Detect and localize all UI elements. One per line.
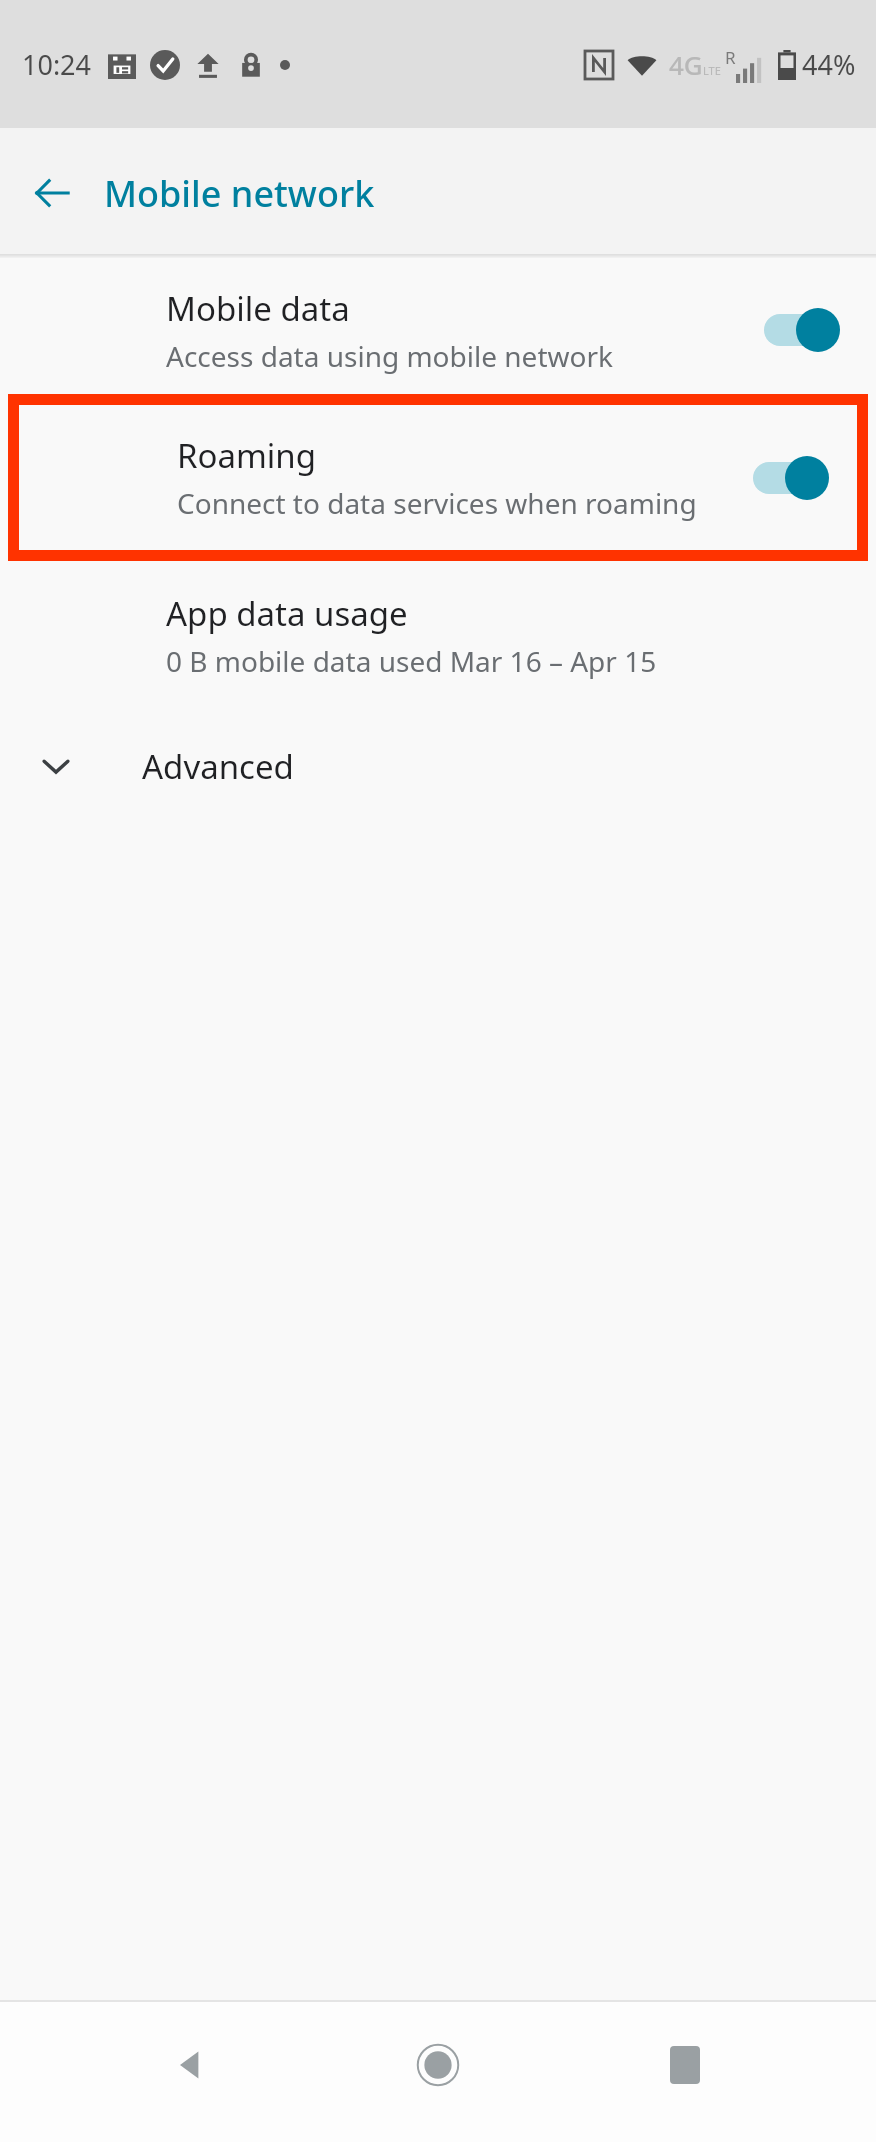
staticText: Mobile data	[166, 286, 350, 331]
button[interactable]: Back	[137, 2010, 247, 2120]
staticText: 44%	[802, 46, 856, 83]
staticText: App data usage	[166, 591, 408, 636]
staticText: Advanced	[142, 744, 294, 789]
button[interactable]: Recent apps	[630, 2010, 740, 2120]
staticText: Mobile network	[104, 169, 375, 218]
staticText: LTE	[703, 63, 721, 78]
staticText: Connect to data services when roaming	[177, 484, 697, 522]
button[interactable]: Home	[383, 2010, 493, 2120]
button[interactable]: Back	[16, 157, 88, 229]
button[interactable]: Advanced	[0, 718, 876, 814]
button[interactable]: App data usage	[0, 575, 876, 696]
staticText: 10:24	[22, 46, 92, 83]
staticText: R	[725, 46, 736, 69]
button[interactable]: Roaming	[19, 405, 857, 550]
staticText: Roaming	[177, 433, 317, 478]
button[interactable]: Toggle on	[762, 302, 840, 358]
staticText: 4G	[669, 47, 703, 82]
button[interactable]: Mobile data	[0, 276, 876, 384]
button[interactable]: Toggle on	[751, 450, 829, 506]
staticText: Access data using mobile network	[166, 337, 613, 375]
staticText: 0 B mobile data used Mar 16 – Apr 15	[166, 642, 657, 680]
